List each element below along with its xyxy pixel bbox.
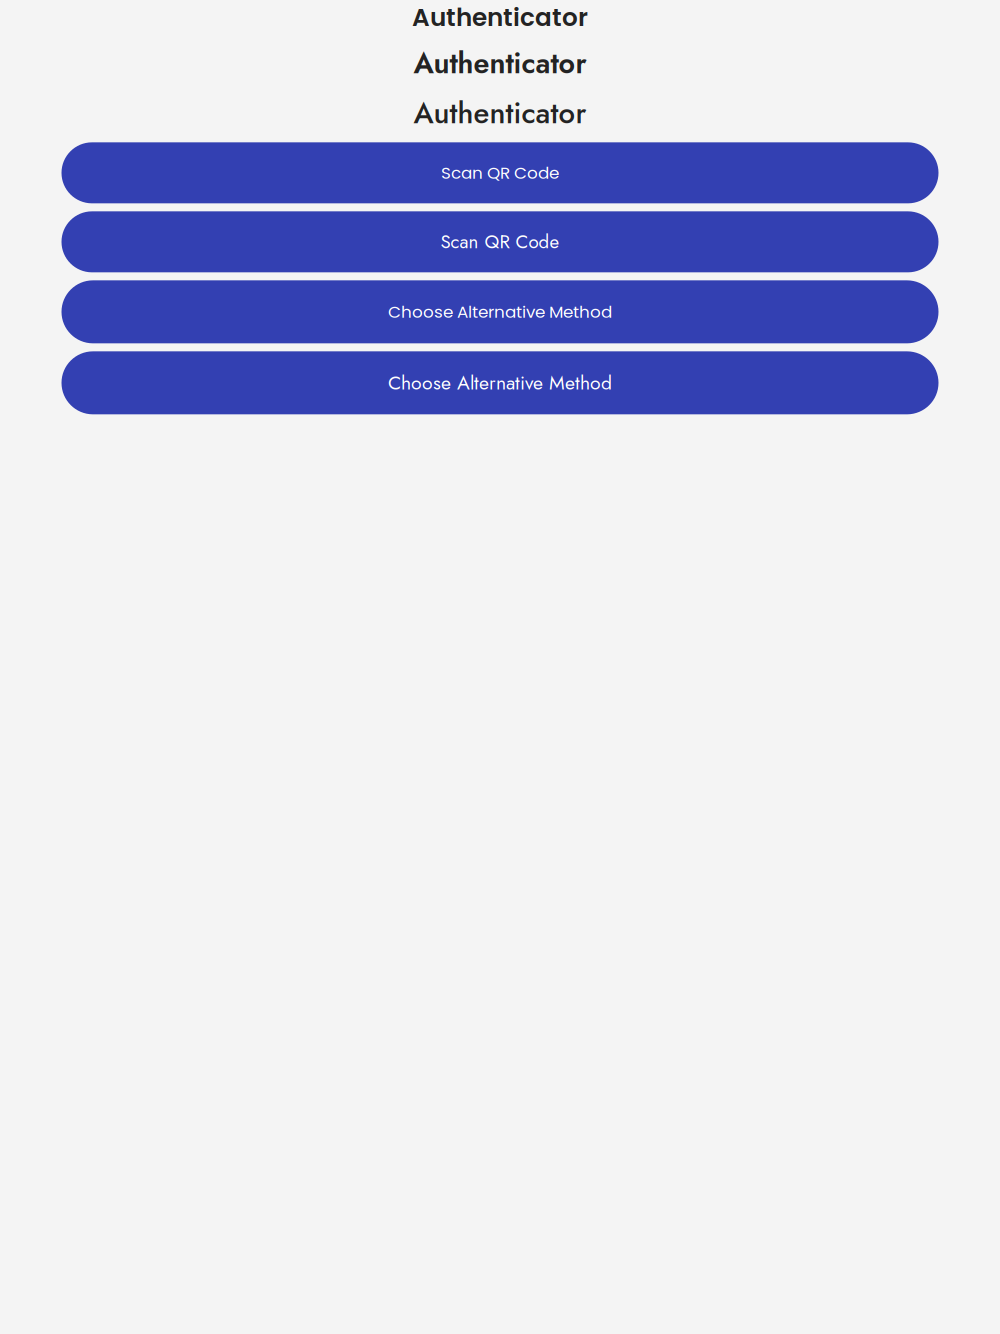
staticText: Authenticator: [412, 0, 588, 34]
staticText: Authenticator: [413, 92, 586, 134]
staticText: Choose Alternative Method: [388, 300, 612, 324]
staticText: Choose Alternative Method: [388, 369, 612, 397]
staticText: Authenticator: [413, 42, 586, 84]
staticText: Scan QR Code: [441, 161, 559, 185]
staticText: Scan QR Code: [440, 228, 559, 255]
